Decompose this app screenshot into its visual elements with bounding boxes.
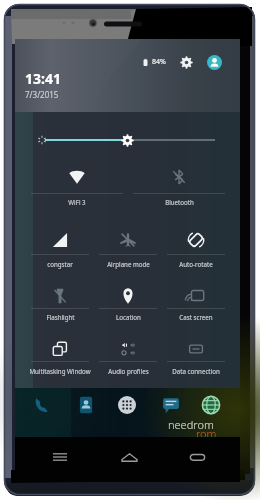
- staticText: 84%: [152, 57, 166, 67]
- button[interactable]: Data connection: [162, 336, 230, 380]
- button[interactable]: Multitasking Window: [26, 336, 94, 380]
- staticText: Multitasking Window: [29, 367, 91, 375]
- button[interactable]: Settings: [176, 52, 196, 72]
- button[interactable]: Flashlight: [26, 283, 94, 327]
- staticText: Bluetooth: [165, 198, 194, 206]
- staticText: Flashlight: [46, 313, 75, 321]
- button[interactable]: Contacts: [74, 393, 98, 417]
- staticText: 13:41: [25, 69, 61, 88]
- button[interactable]: Bluetooth: [128, 164, 230, 208]
- button[interactable]: User profile: [204, 52, 224, 72]
- staticText: rom: [196, 426, 217, 441]
- staticText: Audio profiles: [108, 367, 149, 375]
- button[interactable]: Home: [115, 443, 143, 471]
- staticText: Location: [116, 313, 141, 321]
- button[interactable]: Menu: [46, 443, 74, 471]
- button[interactable]: Audio profiles: [94, 336, 162, 380]
- button[interactable]: Messaging: [159, 393, 183, 417]
- button[interactable]: WiFi 3: [26, 164, 128, 208]
- button[interactable]: Airplane mode: [94, 227, 162, 271]
- button[interactable]: Back: [183, 443, 211, 471]
- button[interactable]: Cast screen: [162, 283, 230, 327]
- staticText: WiFi 3: [68, 198, 86, 206]
- button[interactable]: Brightness: [15, 125, 240, 155]
- staticText: Data connection: [172, 367, 220, 375]
- staticText: needrom: [168, 417, 214, 432]
- staticText: congstar: [47, 260, 73, 268]
- button[interactable]: Phone: [30, 393, 54, 417]
- button[interactable]: congstar: [26, 227, 94, 271]
- staticText: Cast screen: [179, 313, 213, 321]
- button[interactable]: Auto-rotate: [162, 227, 230, 271]
- button[interactable]: Browser: [199, 393, 223, 417]
- staticText: Airplane mode: [107, 260, 150, 268]
- staticText: Auto-rotate: [179, 260, 213, 268]
- button[interactable]: Location: [94, 283, 162, 327]
- staticText: www.needrom.com: [172, 436, 232, 445]
- button[interactable]: Apps: [115, 393, 139, 417]
- staticText: 7/3/2015: [25, 89, 59, 100]
